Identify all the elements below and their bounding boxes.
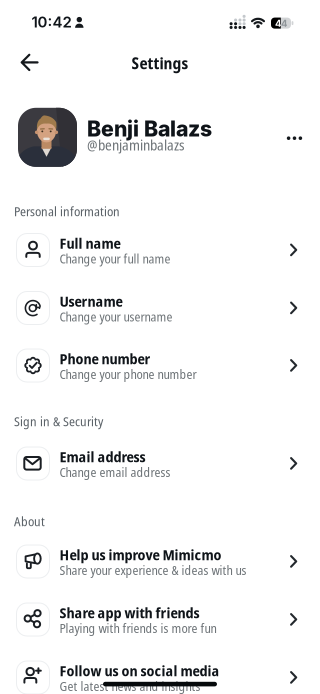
staticText: Sign in & Security: [14, 412, 103, 430]
button[interactable]: Benji Balazs: [18, 108, 278, 167]
button[interactable]: Username: [16, 279, 297, 337]
staticText: @benjaminbalazs: [87, 135, 185, 154]
button[interactable]: Phone number: [16, 336, 297, 394]
staticText: Settings: [131, 52, 188, 74]
staticText: Follow us on social media: [59, 660, 219, 680]
staticText: Share your experience & ideas with us: [59, 561, 246, 578]
staticText: Share app with friends: [59, 602, 199, 622]
staticText: 4: [275, 18, 281, 29]
button[interactable]: Back: [14, 48, 44, 78]
staticText: Phone number: [59, 348, 150, 368]
staticText: 4: [281, 18, 287, 29]
staticText: 10:42: [31, 13, 71, 31]
staticText: Change your full name: [59, 250, 170, 267]
staticText: Personal information: [14, 202, 120, 220]
button[interactable]: More: [278, 127, 311, 149]
button[interactable]: Follow us on social media: [16, 648, 297, 694]
staticText: Change your username: [59, 308, 172, 325]
staticText: Benji Balazs: [87, 116, 212, 141]
staticText: Playing with friends is more fun: [59, 619, 216, 636]
staticText: Get latest news and insights: [59, 677, 200, 694]
staticText: Help us improve Mimicmo: [59, 544, 221, 564]
button[interactable]: Full name: [16, 221, 297, 279]
staticText: Email address: [59, 446, 145, 466]
button[interactable]: Share app with friends: [16, 590, 297, 648]
staticText: Full name: [59, 233, 120, 253]
staticText: Username: [59, 291, 122, 311]
staticText: About: [14, 512, 45, 530]
staticText: Change your phone number: [59, 365, 196, 382]
button[interactable]: Help us improve Mimicmo: [16, 532, 297, 590]
button[interactable]: Email address: [16, 434, 297, 492]
staticText: Change email address: [59, 463, 170, 480]
